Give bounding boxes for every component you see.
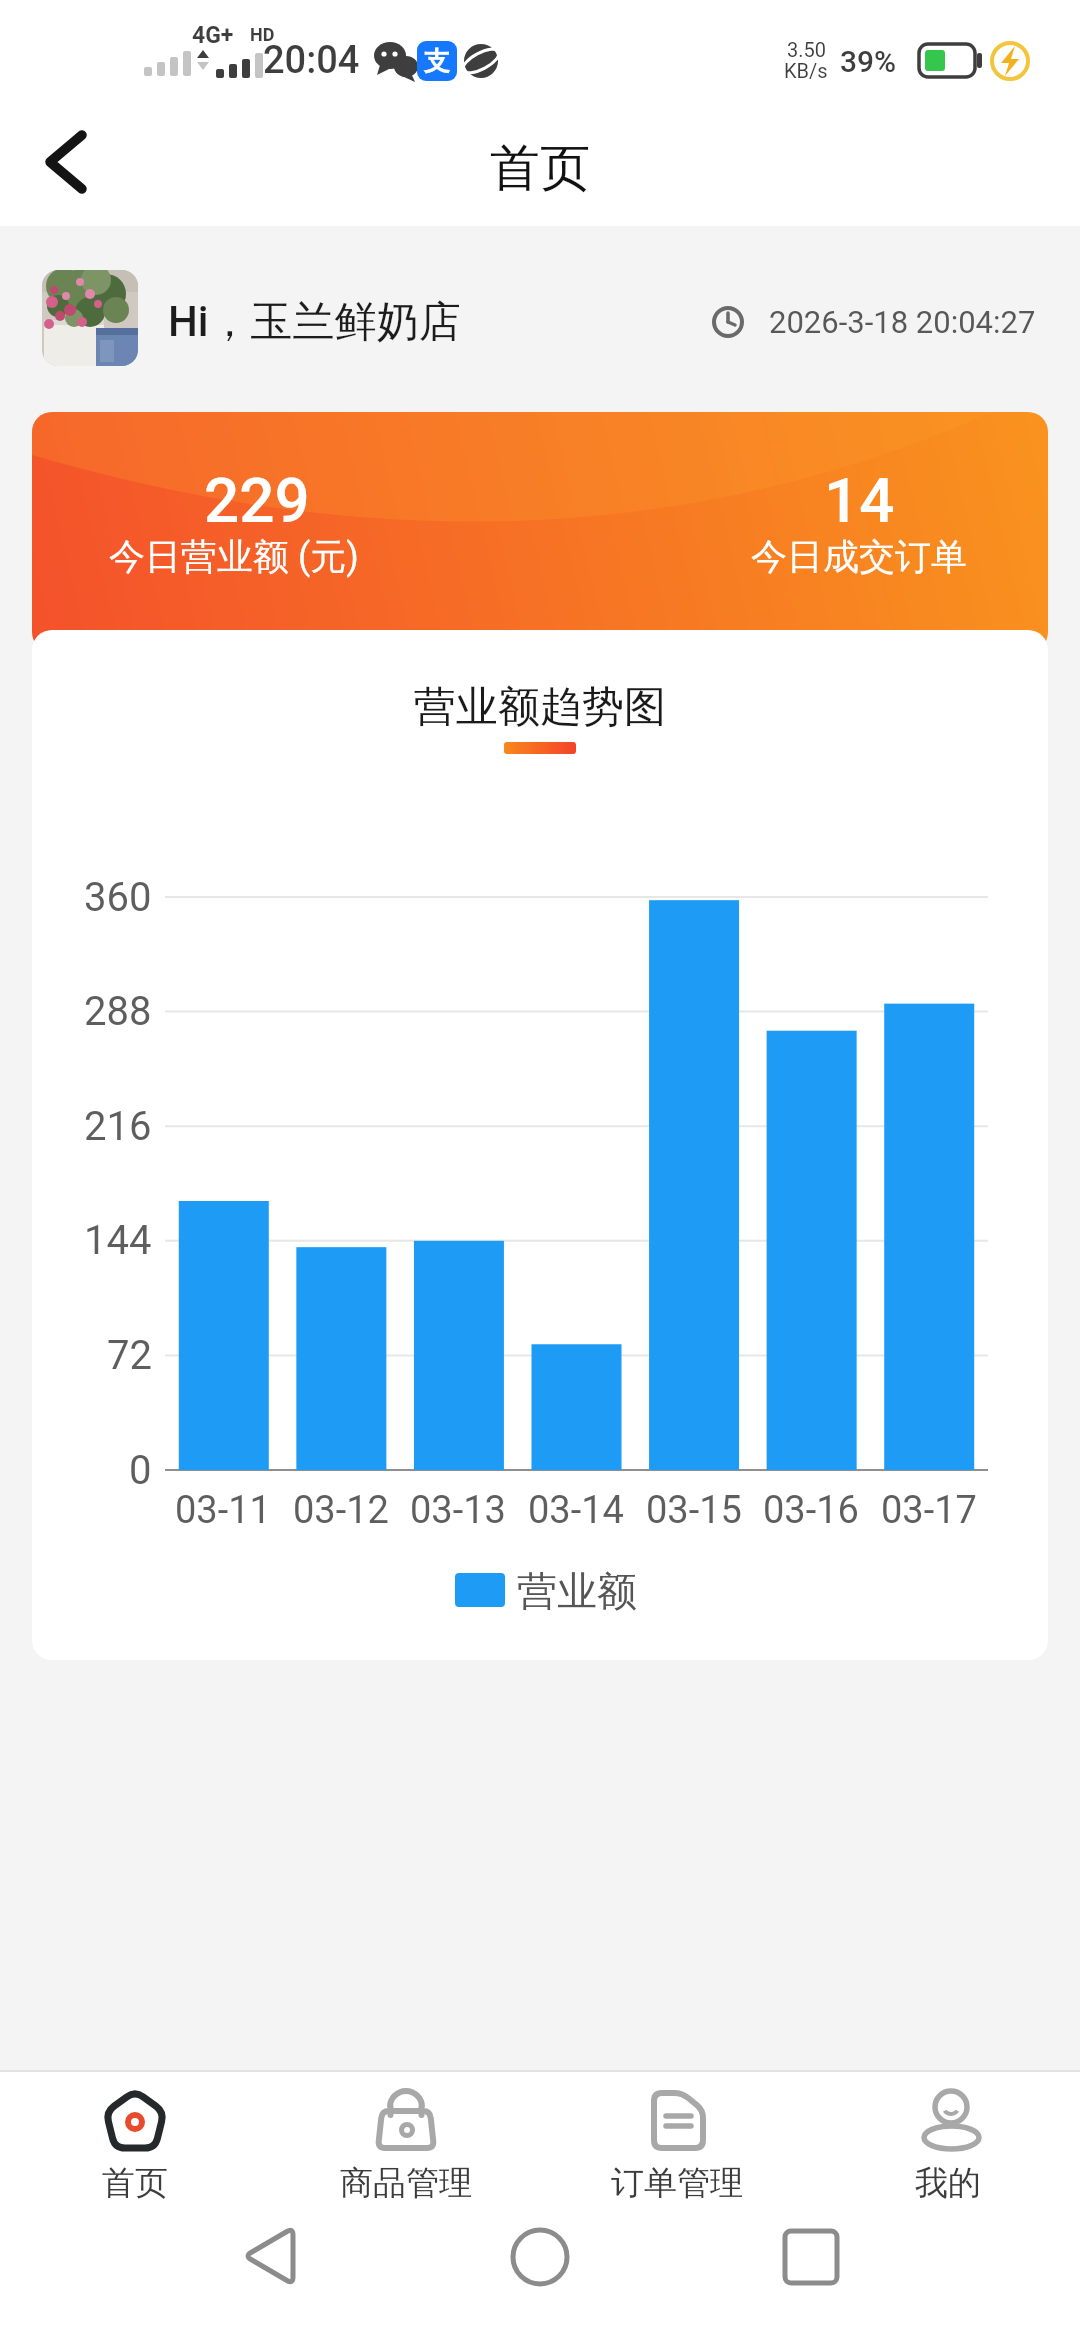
staticText: 2026-3-18 20:04:27 [769,304,1036,340]
staticText: 144 [84,1217,152,1264]
staticText: HD [250,24,275,44]
button[interactable]: 商品管理 [301,2076,511,2206]
button[interactable]: 我的 [843,2076,1053,2206]
staticText: 订单管理 [611,2162,743,2202]
staticText: Hi，玉兰鲜奶店 [168,296,461,348]
staticText: 03-13 [410,1488,506,1533]
staticText: 03-17 [881,1488,977,1533]
staticText: 营业额 [517,1566,637,1614]
staticText: KB/s [784,59,828,81]
staticText: 今日营业额 (元) [109,534,359,579]
button[interactable] [433,2212,647,2302]
staticText: 14 [824,464,895,537]
staticText: 229 [204,464,310,537]
staticText: 首页 [102,2162,168,2202]
staticText: 首页 [490,137,590,200]
staticText: 03-15 [646,1488,742,1533]
button[interactable]: 首页 [30,2076,240,2206]
staticText: 39% [840,44,897,79]
staticText: 今日成交订单 [751,534,967,579]
staticText: 20:04 [263,38,360,83]
staticText: 3.50 [787,38,826,60]
staticText: 03-11 [175,1488,271,1533]
staticText: 0 [129,1447,152,1494]
staticText: 商品管理 [340,2162,472,2202]
staticText: 我的 [915,2162,981,2202]
button[interactable] [14,116,114,220]
button[interactable] [160,2212,374,2302]
staticText: 72 [107,1332,152,1379]
staticText: 4G+ [192,22,234,46]
staticText: 03-12 [293,1488,389,1533]
staticText: 03-16 [763,1488,859,1533]
staticText: 03-14 [528,1488,624,1533]
button[interactable]: 订单管理 [572,2076,782,2206]
staticText: 288 [84,988,152,1035]
button[interactable] [704,2212,918,2302]
staticText: 216 [84,1103,152,1150]
staticText: 支 [424,45,450,78]
staticText: 营业额趋势图 [414,681,666,734]
staticText: 360 [84,874,152,921]
